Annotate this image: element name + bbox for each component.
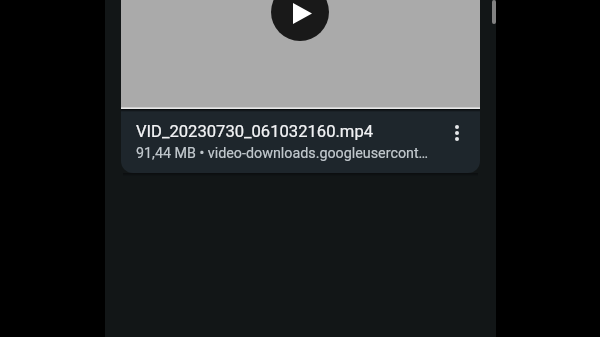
staticText: 91,44 MB • video-downloads.googleusercon… — [136, 145, 429, 162]
button[interactable]: Play video — [271, 0, 329, 41]
button[interactable]: Play video — [121, 0, 480, 173]
button[interactable]: More options — [433, 109, 480, 157]
staticText: VID_20230730_061032160.mp4 — [136, 122, 374, 141]
